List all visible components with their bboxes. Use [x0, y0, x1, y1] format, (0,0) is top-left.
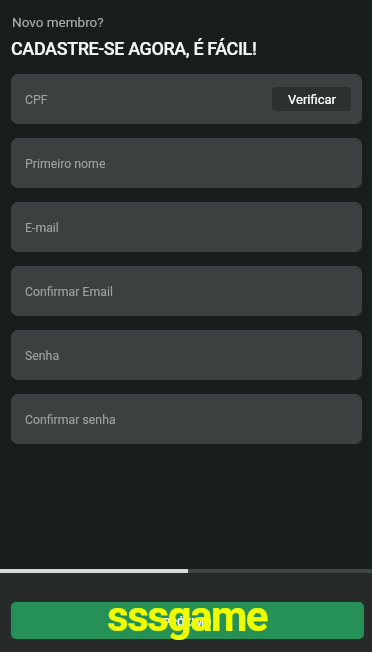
button[interactable]: Confirmar Email — [11, 266, 362, 316]
staticText: Primeiro nome — [25, 157, 106, 171]
button[interactable]: E-mail — [11, 202, 362, 252]
button[interactable]: Primeiro nome — [11, 138, 362, 188]
staticText: E-mail — [25, 221, 59, 235]
staticText: PRÓXIMO — [163, 616, 212, 629]
staticText: Verificar — [288, 92, 336, 107]
staticText: Confirmar senha — [25, 413, 116, 427]
button[interactable]: CPF — [11, 74, 362, 124]
button[interactable]: Senha — [11, 330, 362, 380]
staticText: CPF — [25, 93, 48, 107]
staticText: Confirmar Email — [25, 285, 113, 299]
button[interactable]: PRÓXIMO — [11, 602, 364, 639]
staticText: Senha — [25, 349, 60, 363]
button[interactable]: Verificar — [272, 87, 351, 111]
staticText: Novo membro? — [12, 14, 104, 30]
button[interactable]: Confirmar senha — [11, 394, 362, 444]
staticText: CADASTRE-SE AGORA, É FÁCIL! — [11, 38, 257, 59]
staticText: sssgame — [1, 592, 372, 641]
